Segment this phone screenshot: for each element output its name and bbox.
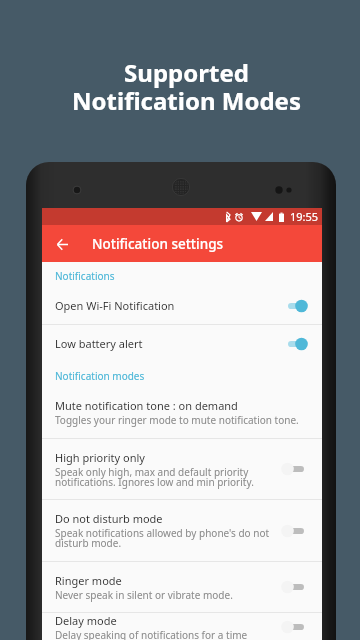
- staticText: Notifications: [55, 269, 115, 283]
- button[interactable]: Mute notification tone : on demand: [42, 387, 322, 438]
- staticText: High priority only: [55, 450, 145, 465]
- button[interactable]: High priority only: [42, 439, 322, 499]
- button[interactable]: Ringer mode: [42, 562, 322, 612]
- button[interactable]: Delay mode: [42, 613, 322, 640]
- button[interactable]: Toggle: [286, 523, 306, 539]
- staticText: Do not disturb mode: [55, 511, 163, 526]
- staticText: Speak notifications allowed by phone's d…: [55, 526, 277, 550]
- button[interactable]: Low battery alert: [42, 325, 322, 362]
- staticText: Open Wi-Fi Notification: [55, 298, 175, 313]
- staticText: Supported Notification Modes: [72, 56, 301, 117]
- staticText: Ringer mode: [55, 573, 122, 588]
- button[interactable]: Do not disturb mode: [42, 500, 322, 561]
- button[interactable]: Navigate up: [46, 228, 78, 260]
- staticText: Toggles your ringer mode to mute notific…: [55, 413, 299, 427]
- button[interactable]: Open Wi-Fi Notification: [42, 287, 322, 324]
- staticText: Speak only high, max and default priorit…: [55, 465, 277, 489]
- staticText: 19:55: [290, 209, 319, 224]
- staticText: Low battery alert: [55, 336, 143, 351]
- staticText: Never speak in silent or vibrate mode.: [55, 588, 233, 602]
- staticText: Delay mode: [55, 613, 117, 628]
- staticText: Notification modes: [55, 369, 145, 383]
- button[interactable]: Toggle: [286, 461, 306, 477]
- staticText: Notification settings: [92, 235, 224, 253]
- staticText: Delay speaking of notifications for a ti…: [55, 628, 277, 640]
- button[interactable]: Toggle: [286, 619, 306, 635]
- staticText: Mute notification tone : on demand: [55, 398, 238, 413]
- button[interactable]: Toggle: [286, 579, 306, 595]
- button[interactable]: Toggle: [286, 298, 306, 314]
- button[interactable]: Toggle: [286, 336, 306, 352]
